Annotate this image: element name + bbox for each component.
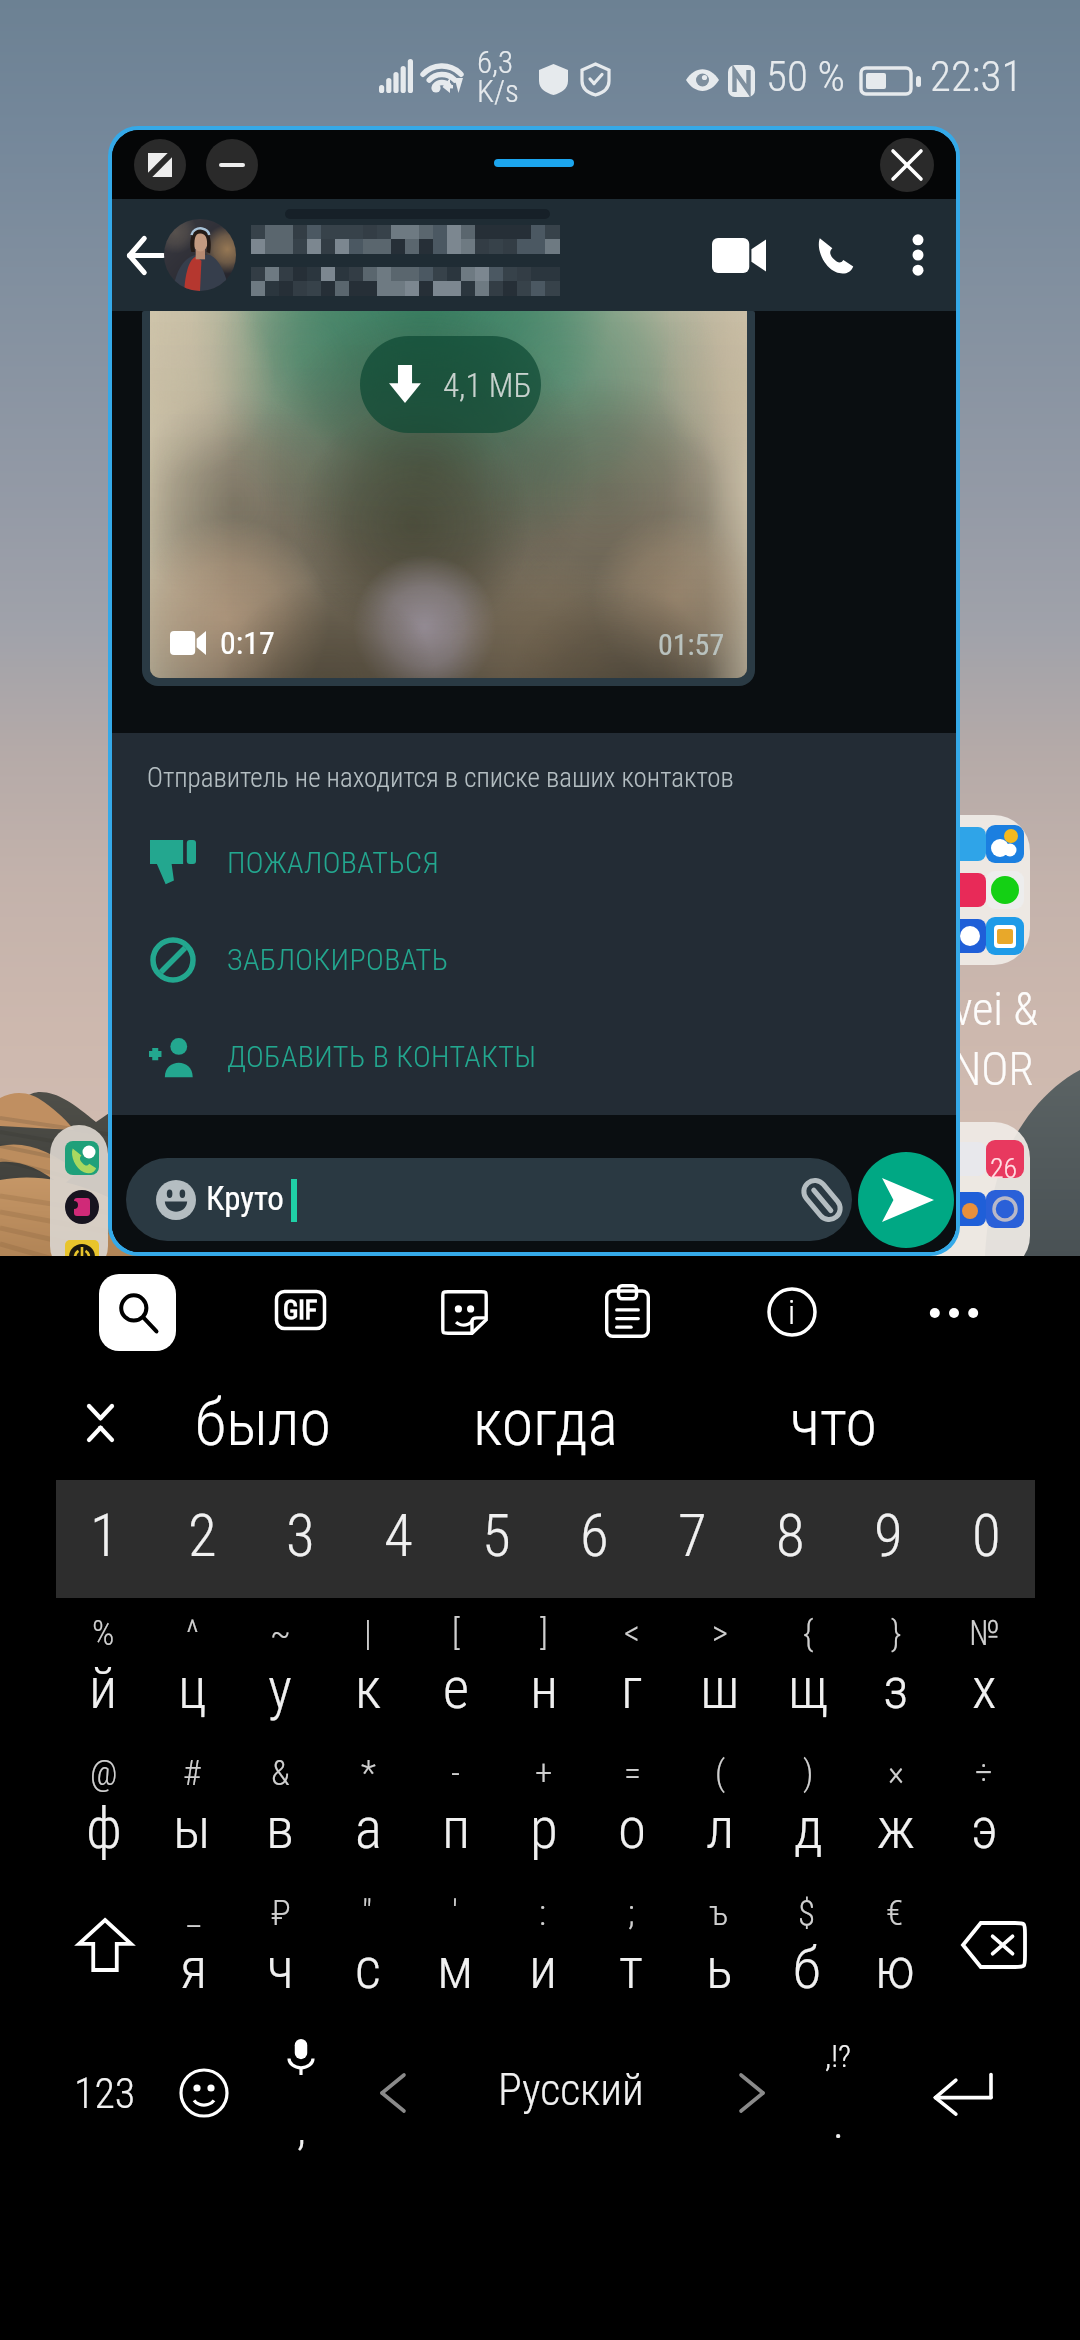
staticText: 22:31 [930, 51, 1023, 101]
button[interactable]: Hide suggestions [74, 1370, 126, 1476]
button[interactable]: × [852, 1743, 940, 1883]
button[interactable] [164, 219, 236, 291]
staticText: п [442, 1795, 471, 1862]
button[interactable]: @ [59, 1743, 148, 1883]
button[interactable]: 2 [153, 1480, 251, 1598]
button[interactable]: ( [676, 1743, 764, 1883]
button[interactable]: # [148, 1743, 236, 1883]
button[interactable] [862, 1122, 1030, 1272]
staticText: г [621, 1655, 643, 1722]
button[interactable]: % [59, 1603, 148, 1743]
staticText: ,!? [825, 2037, 851, 2075]
button[interactable]: Info [767, 1287, 817, 1337]
staticText: * [361, 1753, 376, 1794]
button[interactable]: : [499, 1883, 587, 2023]
button[interactable]: " [324, 1883, 411, 2023]
button[interactable]: Search [99, 1274, 176, 1351]
button[interactable]: ъ [675, 1883, 763, 2023]
button[interactable]: 7 [643, 1480, 741, 1598]
button[interactable]: Toggle opacity [134, 139, 186, 191]
button[interactable]: ~ [236, 1603, 324, 1743]
staticText: и [529, 1935, 558, 2002]
button[interactable]: $ [763, 1883, 851, 2023]
staticText: vei & NOR [953, 982, 1039, 1096]
button[interactable]: Backspace [939, 1883, 1049, 2023]
button[interactable]: № [940, 1603, 1028, 1743]
button[interactable]: ' [411, 1883, 499, 2023]
button[interactable]: Voice input [256, 2023, 346, 2163]
button[interactable]: 5 [447, 1480, 545, 1598]
button[interactable]: & [236, 1743, 324, 1883]
button[interactable]: ,!? [790, 2023, 886, 2163]
button[interactable]: 0 [937, 1480, 1035, 1598]
button[interactable]: = [588, 1743, 676, 1883]
button[interactable]: } [852, 1603, 940, 1743]
button[interactable]: { [764, 1603, 852, 1743]
button[interactable]: Enter [906, 2023, 1016, 2163]
button[interactable]: что [758, 1370, 908, 1476]
button[interactable]: ÷ [940, 1743, 1028, 1883]
button[interactable]: Next language [709, 2023, 793, 2163]
button[interactable]: Круто [126, 1158, 852, 1241]
button[interactable]: 1 [56, 1480, 153, 1598]
button[interactable]: 3 [251, 1480, 349, 1598]
staticText: × [888, 1753, 905, 1794]
staticText: 2 [188, 1501, 217, 1570]
button[interactable]: Download 4,1 MB [142, 311, 755, 686]
button[interactable]: ПОЖАЛОВАТЬСЯ [112, 814, 956, 911]
button[interactable]: | [324, 1603, 412, 1743]
button[interactable]: - [412, 1743, 500, 1883]
button[interactable]: > [676, 1603, 764, 1743]
button[interactable]: Back [116, 199, 174, 311]
staticText: ч [267, 1935, 294, 2002]
button[interactable]: 123 [45, 2023, 165, 2163]
button[interactable]: 4 [349, 1480, 447, 1598]
button[interactable]: 8 [741, 1480, 839, 1598]
button[interactable] [50, 1125, 108, 1275]
button[interactable]: Shift [60, 1883, 150, 2023]
button[interactable]: Previous language [350, 2023, 434, 2163]
button[interactable]: когда [443, 1370, 648, 1476]
button[interactable]: ₽ [237, 1883, 324, 2023]
button[interactable]: More [930, 1293, 978, 1333]
button[interactable]: ) [764, 1743, 852, 1883]
button[interactable]: Attach [799, 1177, 845, 1223]
button[interactable]: [ [412, 1603, 500, 1743]
button[interactable]: ЗАБЛОКИРОВАТЬ [112, 911, 956, 1008]
button[interactable]: 6 [545, 1480, 643, 1598]
staticText: @ [90, 1753, 118, 1794]
button[interactable]: Voice call [790, 199, 880, 311]
button[interactable]: Clipboard [605, 1284, 650, 1338]
button[interactable]: Download 4,1 MB [360, 336, 541, 433]
button[interactable]: Minimise [206, 139, 258, 191]
button[interactable]: 9 [839, 1480, 937, 1598]
button[interactable]: ] [500, 1603, 588, 1743]
button[interactable]: _ [150, 1883, 237, 2023]
button[interactable]: ; [587, 1883, 675, 2023]
button[interactable]: Video call [694, 199, 784, 311]
button[interactable]: GIF [275, 1290, 326, 1330]
staticText: я [180, 1935, 208, 2002]
button[interactable]: More options [880, 199, 956, 311]
button[interactable]: ^ [148, 1603, 236, 1743]
button[interactable]: * [324, 1743, 412, 1883]
staticText: 26 [990, 1152, 1018, 1185]
staticText: ъ [709, 1893, 729, 1934]
staticText: м [437, 1935, 474, 2002]
button[interactable]: Русский [427, 2023, 715, 2163]
button[interactable]: было [163, 1370, 363, 1476]
staticText: > [712, 1613, 728, 1654]
button[interactable]: + [500, 1743, 588, 1883]
button[interactable]: Emoji [149, 2023, 259, 2163]
button[interactable]: ДОБАВИТЬ В КОНТАКТЫ [112, 1008, 956, 1105]
button[interactable]: Send [858, 1152, 954, 1248]
button[interactable]: Window handle [494, 159, 574, 167]
button[interactable] [862, 815, 1030, 965]
staticText: ] [540, 1613, 548, 1654]
staticText: # [183, 1753, 201, 1794]
button[interactable]: Close [880, 138, 934, 192]
staticText: $ [798, 1893, 816, 1934]
button[interactable]: < [588, 1603, 676, 1743]
button[interactable]: Stickers [441, 1290, 488, 1335]
button[interactable]: € [851, 1883, 939, 2023]
